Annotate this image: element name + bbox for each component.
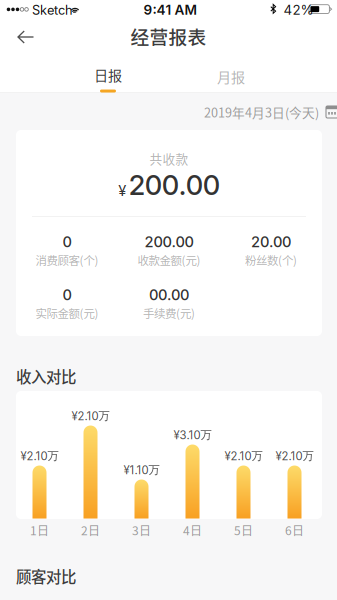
staticText: 4日 xyxy=(183,521,202,539)
staticText: ¥2.10万 xyxy=(224,449,262,463)
button[interactable]: Back xyxy=(8,24,44,50)
staticText: 00.00 xyxy=(149,286,189,304)
staticText: 2日 xyxy=(81,521,100,539)
button[interactable]: 日报 xyxy=(73,66,143,93)
staticText: ¥2.10万 xyxy=(71,409,109,423)
staticText: 消费顾客(个) xyxy=(35,252,98,268)
staticText: 月报 xyxy=(217,66,245,86)
staticText: 2019年4月3日(今天) xyxy=(204,103,319,121)
staticText: ¥3.10万 xyxy=(173,428,211,442)
staticText: 20.00 xyxy=(251,233,291,251)
staticText: 手续费(元) xyxy=(143,305,195,321)
button[interactable]: 2019年4月3日(今天) xyxy=(204,104,337,120)
staticText: ¥2.10万 xyxy=(20,449,58,463)
staticText: 顾客对比 xyxy=(16,565,76,587)
staticText: 42% xyxy=(283,2,313,18)
staticText: 0 xyxy=(62,233,71,251)
staticText: 9:41 AM xyxy=(143,2,197,18)
staticText: 实际金额(元) xyxy=(35,305,98,321)
button[interactable]: 月报 xyxy=(196,66,266,93)
staticText: 1日 xyxy=(30,521,49,539)
staticText: Sketch xyxy=(32,2,73,18)
staticText: ¥ xyxy=(118,182,126,199)
staticText: 200.00 xyxy=(144,233,193,251)
staticText: 经营报表 xyxy=(130,22,206,49)
staticText: ¥1.10万 xyxy=(123,463,159,477)
staticText: ¥2.10万 xyxy=(275,449,313,463)
staticText: 0 xyxy=(62,286,71,304)
staticText: 5日 xyxy=(234,521,253,539)
staticText: 3日 xyxy=(132,521,151,539)
staticText: 200.00 xyxy=(129,168,220,202)
staticText: 日报 xyxy=(94,64,122,85)
staticText: 收款金额(元) xyxy=(137,252,200,268)
staticText: 6日 xyxy=(285,521,304,539)
staticText: 共收款 xyxy=(149,149,188,168)
staticText: 粉丝数(个) xyxy=(245,252,297,268)
staticText: 收入对比 xyxy=(16,365,76,387)
